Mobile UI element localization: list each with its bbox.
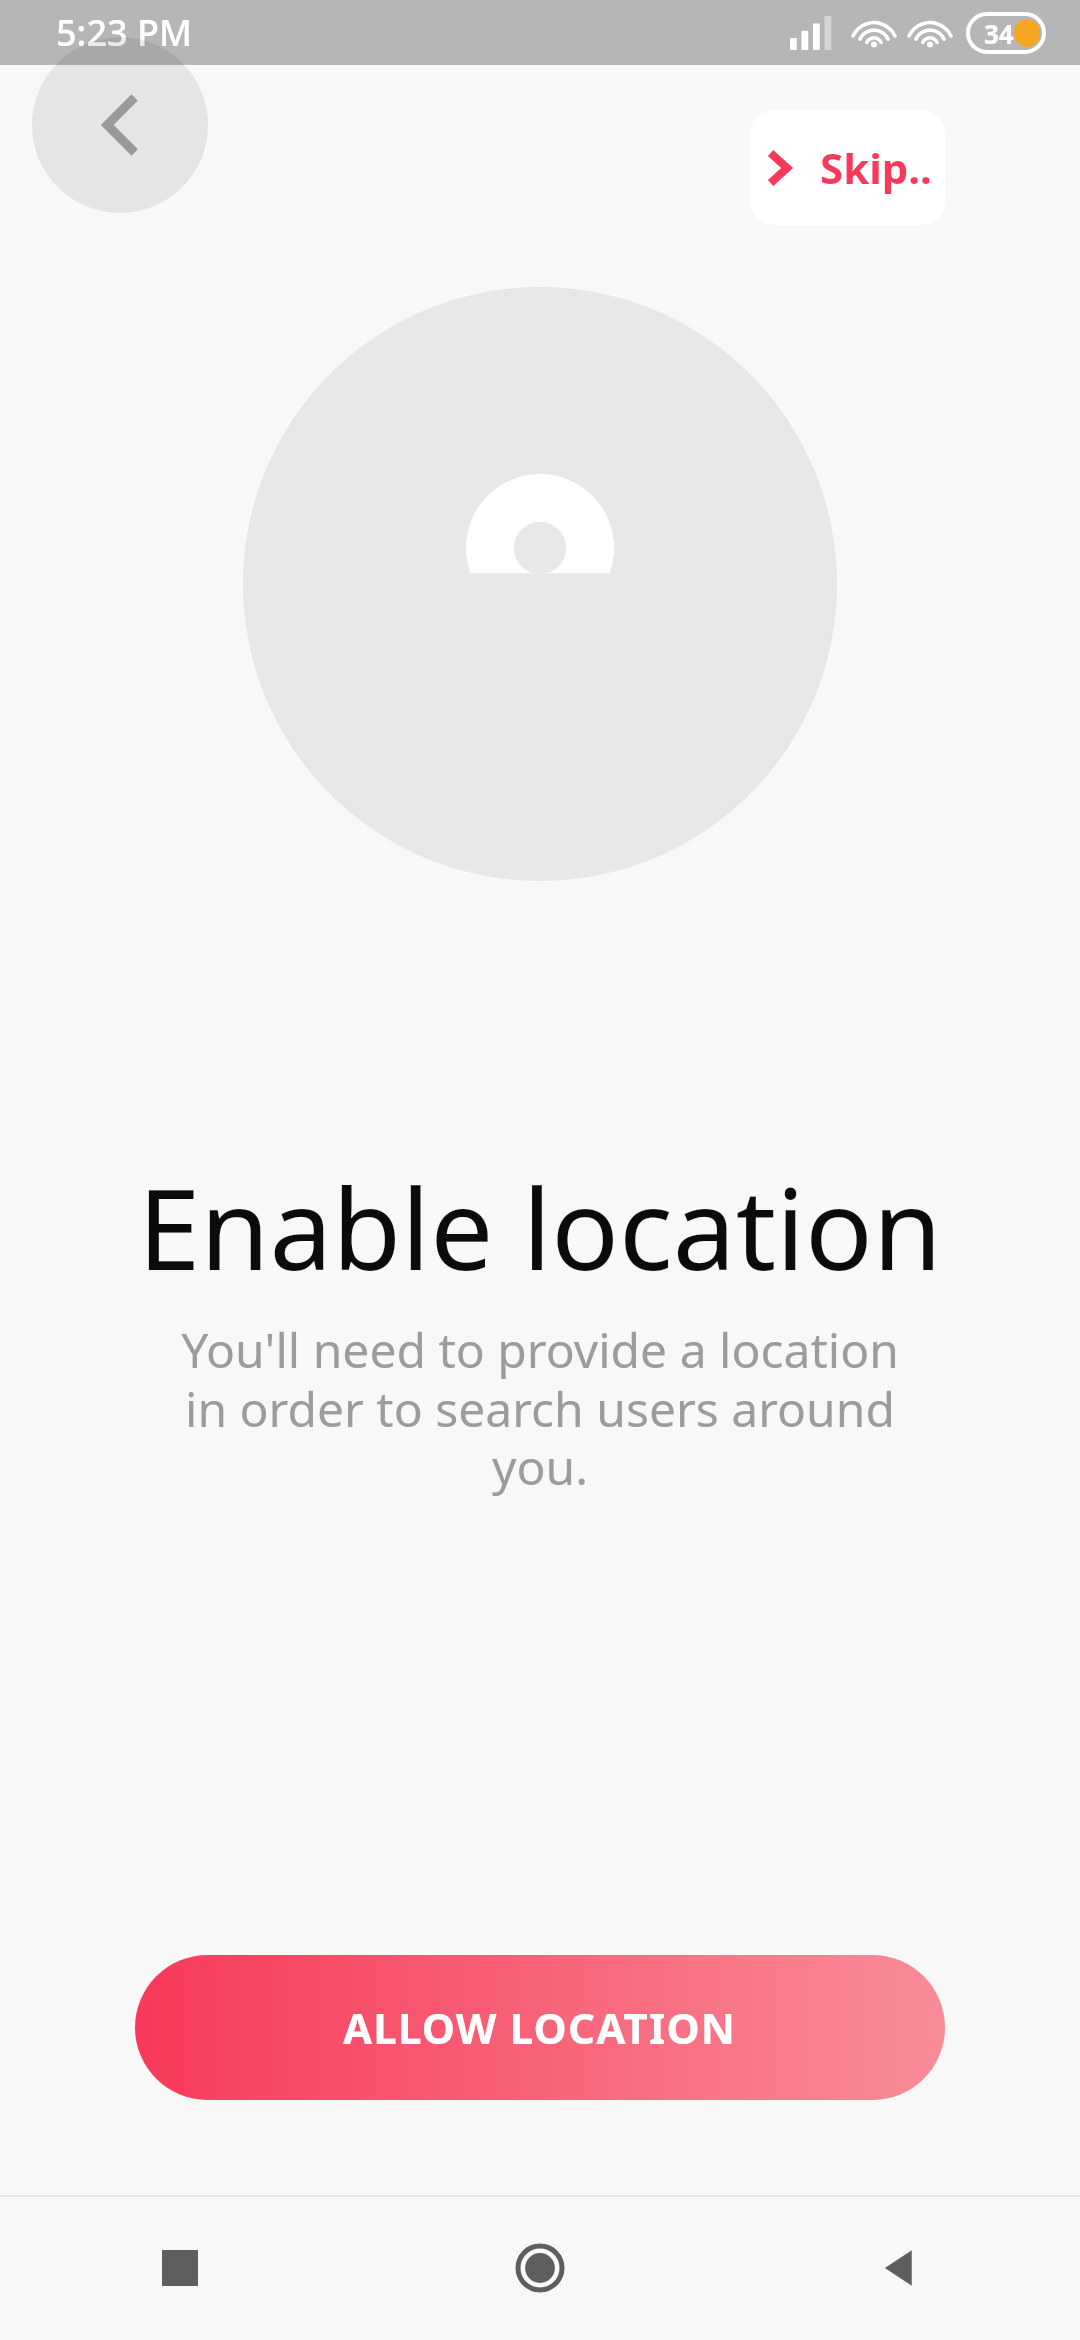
staticText: You'll need to provide a location in ord… (170, 1317, 910, 1499)
staticText: Skip.. (820, 139, 932, 196)
staticText: 5:23 PM (56, 8, 192, 57)
button[interactable]: Back (720, 2195, 1080, 2340)
staticText: 34 (984, 16, 1014, 51)
staticText: ALLOW LOCATION (343, 1999, 737, 2056)
button[interactable]: ALLOW LOCATION (135, 1955, 945, 2100)
staticText: Enable location (138, 1150, 942, 1303)
button[interactable]: Back (32, 37, 208, 213)
button[interactable]: Home (360, 2195, 720, 2340)
button[interactable]: Skip.. (750, 110, 945, 225)
button[interactable]: Recents (0, 2195, 360, 2340)
